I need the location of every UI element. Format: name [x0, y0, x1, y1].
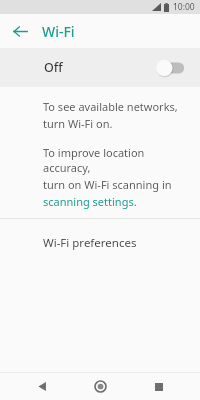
- staticText: turn on Wi-Fi scanning in: [43, 177, 172, 192]
- staticText: Off: [44, 59, 63, 76]
- button[interactable]: scanning settings.: [43, 194, 137, 209]
- staticText: Wi-Fi preferences: [43, 235, 137, 251]
- button[interactable]: Recent apps: [142, 373, 176, 400]
- staticText: turn Wi-Fi on.: [43, 116, 113, 131]
- staticText: To see available networks,: [43, 99, 178, 114]
- staticText: 10:00: [173, 1, 195, 13]
- staticText: scanning settings.: [43, 194, 137, 209]
- staticText: Wi-Fi: [42, 22, 75, 41]
- staticText: To improve location accuracy,: [43, 145, 188, 175]
- other: Wi-Fi toggle: [156, 59, 186, 77]
- button[interactable]: Back: [8, 19, 32, 43]
- button[interactable]: Off: [0, 48, 200, 87]
- button[interactable]: Home: [83, 373, 117, 400]
- button[interactable]: Wi-Fi preferences: [0, 219, 200, 267]
- button[interactable]: Back: [25, 373, 59, 400]
